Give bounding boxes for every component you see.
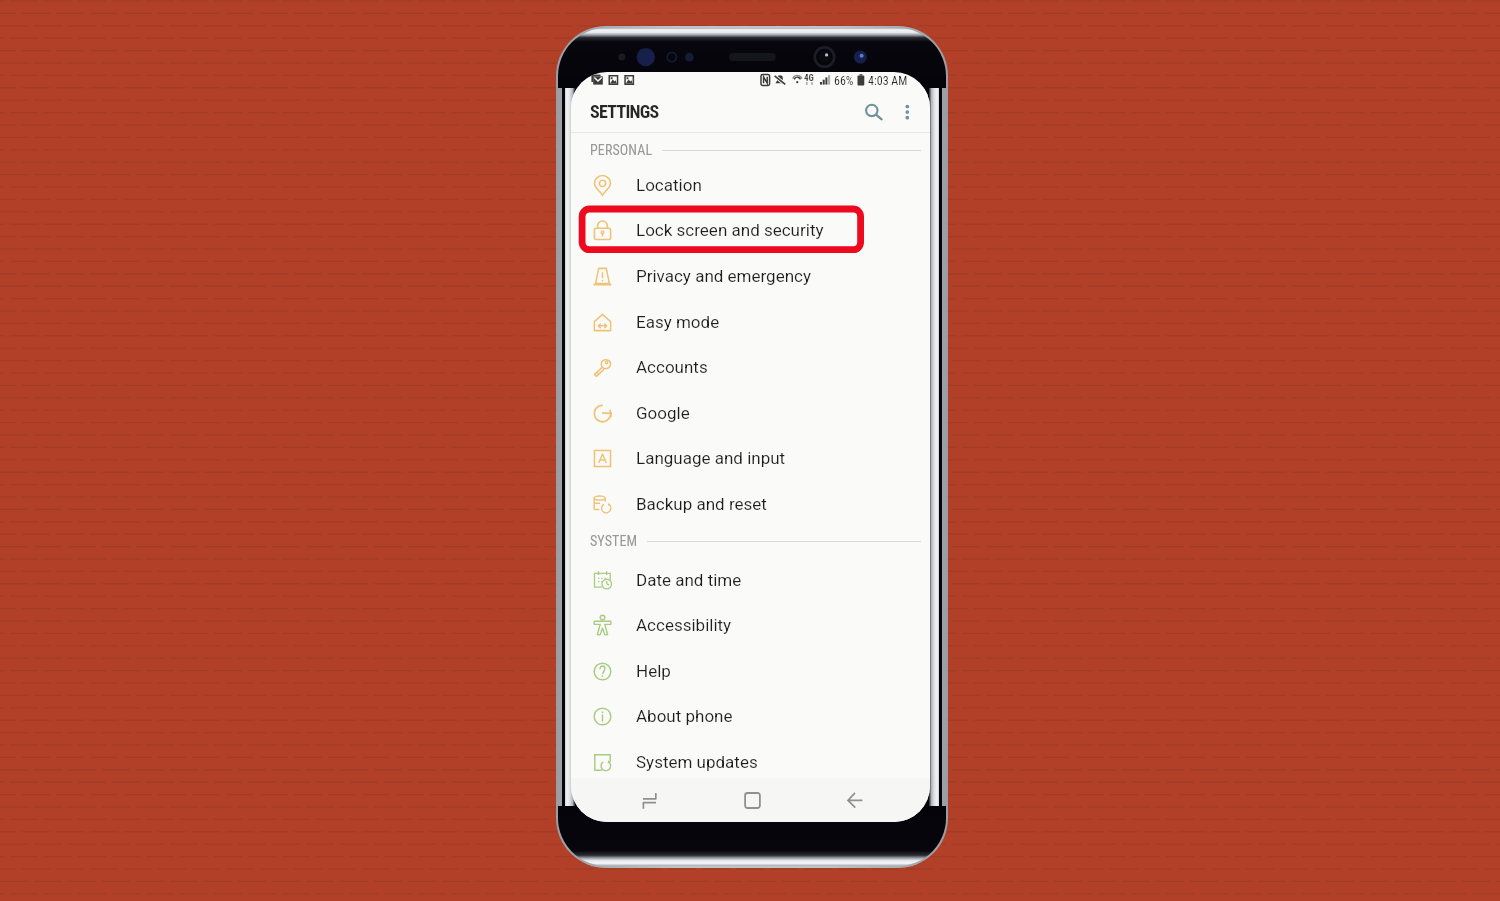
staticText: Easy mode	[636, 312, 720, 332]
button[interactable]: Easy mode	[571, 299, 930, 345]
button[interactable]: Privacy and emergency	[571, 253, 930, 299]
staticText: Language and input	[636, 448, 786, 468]
button[interactable]: Date and time	[571, 557, 930, 603]
staticText: 4G	[804, 73, 814, 84]
staticText: Backup and reset	[636, 494, 767, 514]
button[interactable]: Google	[571, 390, 930, 436]
button[interactable]: Location	[571, 162, 930, 208]
staticText: PERSONAL	[590, 142, 653, 158]
button[interactable]: Language and input	[571, 435, 930, 481]
staticText: SYSTEM	[590, 533, 638, 549]
staticText: SETTINGS	[590, 101, 659, 122]
staticText: Privacy and emergency	[636, 266, 812, 286]
staticText: Date and time	[636, 570, 742, 590]
staticText: Location	[636, 175, 702, 195]
staticText: System updates	[636, 752, 758, 772]
staticText: 66%	[834, 74, 854, 88]
button[interactable]: Lock screen and security	[571, 207, 930, 253]
staticText: Help	[636, 661, 671, 681]
button[interactable]: Help	[571, 648, 930, 694]
staticText: Accounts	[636, 357, 708, 377]
button[interactable]: More options	[891, 89, 924, 133]
button[interactable]: System updates	[571, 739, 930, 785]
button[interactable]: About phone	[571, 693, 930, 739]
staticText: Lock screen and security	[636, 220, 824, 240]
button[interactable]: Home	[726, 778, 778, 822]
button[interactable]: Accounts	[571, 344, 930, 390]
button[interactable]: Recent apps	[627, 778, 673, 822]
button[interactable]: Accessibility	[571, 602, 930, 648]
button[interactable]: Backup and reset	[571, 481, 930, 527]
staticText: About phone	[636, 706, 733, 726]
staticText: Google	[636, 403, 690, 423]
staticText: 4:03 AM	[868, 74, 908, 88]
button[interactable]: Back	[825, 778, 873, 822]
staticText: Accessibility	[636, 615, 732, 635]
button[interactable]: Search	[850, 89, 894, 133]
